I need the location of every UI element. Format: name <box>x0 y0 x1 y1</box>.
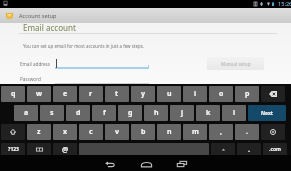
staticText: Manual setup <box>221 61 251 67</box>
staticText: r <box>89 89 93 99</box>
button[interactable]: Account setup <box>0 8 291 23</box>
staticText: g <box>128 108 133 118</box>
button[interactable]: Home <box>128 155 164 171</box>
staticText: w <box>36 89 42 99</box>
button[interactable]: u <box>157 86 181 102</box>
button[interactable]: More <box>211 143 235 156</box>
staticText: p <box>245 89 250 99</box>
button[interactable]: b <box>131 124 155 140</box>
button[interactable]: v <box>105 124 129 140</box>
staticText: , <box>220 127 222 137</box>
button[interactable]: f <box>92 105 116 121</box>
button[interactable]: Next <box>248 105 286 121</box>
button[interactable]: t <box>105 86 129 102</box>
staticText: d <box>76 108 81 118</box>
button[interactable]: c <box>79 124 103 140</box>
staticText: ?123 <box>8 146 19 153</box>
other: Shift <box>10 129 16 135</box>
staticText: You can set up email for most accounts i… <box>23 43 144 49</box>
button[interactable]: q <box>1 86 25 102</box>
button[interactable]: m <box>183 124 207 140</box>
button[interactable]: .com <box>263 143 287 156</box>
staticText: l <box>233 108 236 118</box>
button[interactable]: z <box>27 124 51 140</box>
button[interactable]: . <box>235 124 259 140</box>
button[interactable]: . <box>237 143 261 156</box>
button[interactable] <box>79 143 209 156</box>
staticText: o <box>219 89 224 99</box>
button[interactable]: Emoji <box>261 124 285 140</box>
button[interactable]: y <box>131 86 155 102</box>
button[interactable]: j <box>170 105 194 121</box>
staticText: 15:26 <box>278 0 291 8</box>
staticText: . <box>246 127 248 137</box>
staticText: Next <box>261 110 274 117</box>
button[interactable]: Switch keyboard <box>27 143 51 156</box>
button[interactable]: n <box>157 124 181 140</box>
staticText: c <box>89 127 93 137</box>
staticText: Password <box>20 76 41 82</box>
staticText: x <box>63 127 68 137</box>
button[interactable]: o <box>209 86 233 102</box>
staticText: v <box>115 127 119 137</box>
staticText: q <box>11 89 16 99</box>
staticText: . <box>248 145 250 155</box>
staticText: f <box>103 108 106 118</box>
staticText: Email account <box>23 22 77 33</box>
button[interactable]: Back <box>92 155 128 171</box>
staticText: t <box>115 89 119 99</box>
button[interactable]: e <box>53 86 77 102</box>
button[interactable]: i <box>183 86 207 102</box>
button[interactable]: l <box>222 105 246 121</box>
staticText: u <box>167 89 172 99</box>
button[interactable]: r <box>79 86 103 102</box>
staticText: y <box>141 89 145 99</box>
button[interactable]: Manual setup <box>207 57 264 70</box>
staticText: i <box>194 89 197 99</box>
staticText: k <box>206 108 211 118</box>
staticText: .com <box>269 146 281 153</box>
button[interactable]: x <box>53 124 77 140</box>
button[interactable]: a <box>14 105 38 121</box>
staticText: h <box>154 108 159 118</box>
staticText: e <box>63 89 68 99</box>
button[interactable]: g <box>118 105 142 121</box>
button[interactable]: , <box>209 124 233 140</box>
other: Emoji <box>270 129 276 135</box>
button[interactable]: Shift <box>1 124 25 140</box>
staticText: z <box>37 127 41 137</box>
staticText: n <box>167 127 172 137</box>
button[interactable]: s <box>40 105 64 121</box>
staticText: Email address <box>20 61 51 67</box>
staticText: @ <box>62 145 69 155</box>
other: Switch keyboard <box>36 147 43 152</box>
staticText: Account setup <box>19 12 57 20</box>
button[interactable]: h <box>144 105 168 121</box>
button[interactable]: k <box>196 105 220 121</box>
button[interactable]: p <box>235 86 259 102</box>
staticText: j <box>181 108 184 118</box>
staticText: a <box>24 108 29 118</box>
other: More <box>221 147 226 152</box>
staticText: s <box>50 108 54 118</box>
staticText: m <box>192 127 199 137</box>
button[interactable]: Recent apps <box>164 155 200 171</box>
button[interactable]: @ <box>53 143 77 156</box>
button[interactable]: Backspace <box>261 86 285 102</box>
button[interactable]: d <box>66 105 90 121</box>
button[interactable]: w <box>27 86 51 102</box>
other: Backspace <box>269 91 277 97</box>
button[interactable]: ?123 <box>1 143 25 156</box>
staticText: b <box>141 127 146 137</box>
